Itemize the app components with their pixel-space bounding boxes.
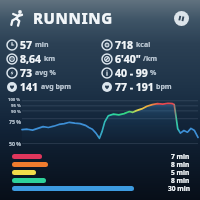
- staticText: %: [150, 68, 157, 78]
- staticText: 7 min: [171, 152, 190, 160]
- staticText: RUNNING: [33, 8, 113, 28]
- staticText: avg bpm: [41, 82, 72, 92]
- button[interactable]: [12, 160, 172, 168]
- staticText: 73: [20, 66, 33, 80]
- button[interactable]: 40 - 99: [102, 66, 200, 80]
- button[interactable]: [12, 168, 172, 176]
- staticText: kcal: [136, 40, 151, 50]
- button[interactable]: 73: [7, 66, 100, 80]
- staticText: 50 %: [9, 140, 21, 147]
- staticText: 30 min: [168, 184, 190, 192]
- button[interactable]: Pause: [174, 11, 189, 26]
- button[interactable]: 6'40": [102, 52, 200, 66]
- staticText: km: [44, 54, 56, 64]
- staticText: 40 - 99: [115, 66, 148, 80]
- staticText: 5 min: [171, 168, 190, 176]
- button[interactable]: 141: [7, 80, 100, 94]
- staticText: 141: [20, 80, 39, 94]
- staticText: 77 - 191: [115, 80, 154, 94]
- staticText: 6'40": [115, 52, 141, 66]
- staticText: 100 %: [8, 97, 21, 103]
- staticText: min: [35, 40, 49, 50]
- staticText: 8 min: [171, 176, 190, 184]
- staticText: /km: [143, 54, 158, 64]
- staticText: 90 %: [11, 109, 21, 115]
- button[interactable]: 57: [7, 38, 100, 52]
- staticText: 75 %: [9, 118, 21, 125]
- button[interactable]: 77 - 191: [102, 80, 200, 94]
- staticText: 57: [20, 38, 33, 52]
- staticText: 8,64: [20, 52, 42, 66]
- staticText: 718: [115, 38, 134, 52]
- staticText: 8 min: [171, 160, 190, 168]
- button[interactable]: 8,64: [7, 52, 100, 66]
- button[interactable]: [12, 152, 172, 160]
- button[interactable]: [12, 184, 172, 192]
- staticText: bpm: [156, 82, 172, 92]
- staticText: avg %: [35, 68, 56, 78]
- button[interactable]: 718: [102, 38, 200, 52]
- staticText: 95 %: [11, 103, 21, 109]
- button[interactable]: [12, 176, 172, 184]
